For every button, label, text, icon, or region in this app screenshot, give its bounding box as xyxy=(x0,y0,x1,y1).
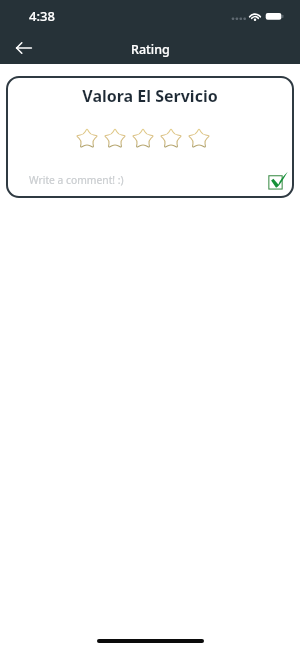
button[interactable]: Submit comment xyxy=(265,168,289,192)
button[interactable]: Back xyxy=(8,32,40,64)
button[interactable]: Rate 3 stars xyxy=(129,126,157,150)
staticText: Write a comment! :) xyxy=(29,173,124,187)
button[interactable]: Rate 4 stars xyxy=(157,126,185,150)
button[interactable]: Rate 2 stars xyxy=(101,126,129,150)
staticText: Valora El Servicio xyxy=(6,85,294,107)
staticText: Rating xyxy=(131,41,170,58)
button[interactable]: Rate 5 stars xyxy=(185,126,213,150)
staticText: 4:38 xyxy=(29,7,55,25)
button[interactable]: Rate 1 stars xyxy=(73,126,101,150)
